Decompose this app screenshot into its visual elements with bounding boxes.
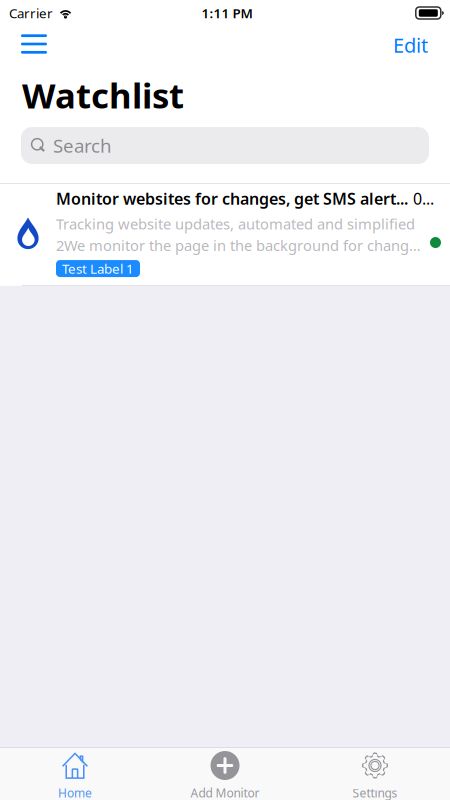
button[interactable]: Add Monitor [150, 748, 300, 800]
button[interactable]: Menu [13, 25, 55, 60]
staticText: Tracking website updates, automated and … [56, 214, 415, 234]
staticText: Monitor websites for changes, get SMS al… [56, 188, 408, 209]
staticText: Add Monitor [190, 785, 259, 800]
button[interactable]: Edit [385, 22, 436, 63]
staticText: 0... [413, 188, 434, 209]
staticText: Settings [352, 785, 397, 800]
button[interactable]: Settings [300, 748, 450, 800]
staticText: 1:11 PM [201, 4, 252, 22]
button[interactable]: Home [0, 748, 150, 800]
staticText: Carrier [9, 4, 53, 22]
button[interactable]: Monitor websites for changes, get SMS al… [0, 184, 450, 285]
staticText: 2We monitor the page in the background f… [56, 236, 426, 255]
staticText: Search [53, 133, 112, 158]
staticText: Edit [393, 32, 428, 58]
staticText: Watchlist [22, 72, 184, 118]
staticText: Test Label 1 [62, 260, 134, 277]
staticText: Home [58, 785, 92, 800]
